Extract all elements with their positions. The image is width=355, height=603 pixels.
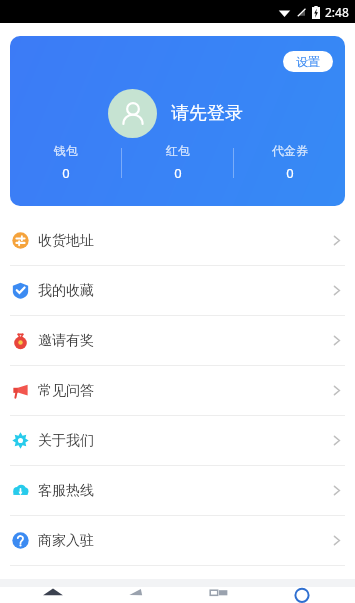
staticText: 客服热线 [38, 482, 94, 500]
button[interactable]: 商家入驻 [0, 516, 355, 566]
button[interactable]: 收货地址 [0, 216, 355, 266]
staticText: 请先登录 [171, 102, 243, 125]
button[interactable]: Profile [272, 587, 332, 603]
staticText: 0 [286, 164, 294, 182]
staticText: 0 [174, 164, 182, 182]
button[interactable]: Avatar [108, 89, 157, 138]
button[interactable]: 邀请有奖 [0, 316, 355, 366]
staticText: 常见问答 [38, 382, 94, 400]
staticText: 邀请有奖 [38, 332, 94, 350]
staticText: 红包 [166, 143, 190, 158]
staticText: 2:48 [325, 4, 349, 20]
staticText: 收货地址 [38, 232, 94, 250]
button[interactable]: 客服热线 [0, 466, 355, 516]
staticText: 设置 [296, 54, 320, 69]
staticText: 关于我们 [38, 432, 94, 450]
button[interactable]: Messages [189, 587, 249, 603]
staticText: 代金券 [272, 143, 308, 158]
button[interactable]: 钱包 [10, 143, 121, 182]
button[interactable]: 红包 [122, 143, 233, 182]
button[interactable]: Orders [106, 587, 166, 603]
staticText: 我的收藏 [38, 282, 94, 300]
staticText: 商家入驻 [38, 532, 94, 550]
button[interactable]: 代金券 [234, 143, 345, 182]
button[interactable]: 设置 [283, 51, 333, 72]
button[interactable]: 关于我们 [0, 416, 355, 466]
staticText: 钱包 [54, 143, 78, 158]
button[interactable]: 常见问答 [0, 366, 355, 416]
button[interactable]: 我的收藏 [0, 266, 355, 316]
staticText: 0 [62, 164, 70, 182]
button[interactable]: Home [23, 587, 83, 603]
